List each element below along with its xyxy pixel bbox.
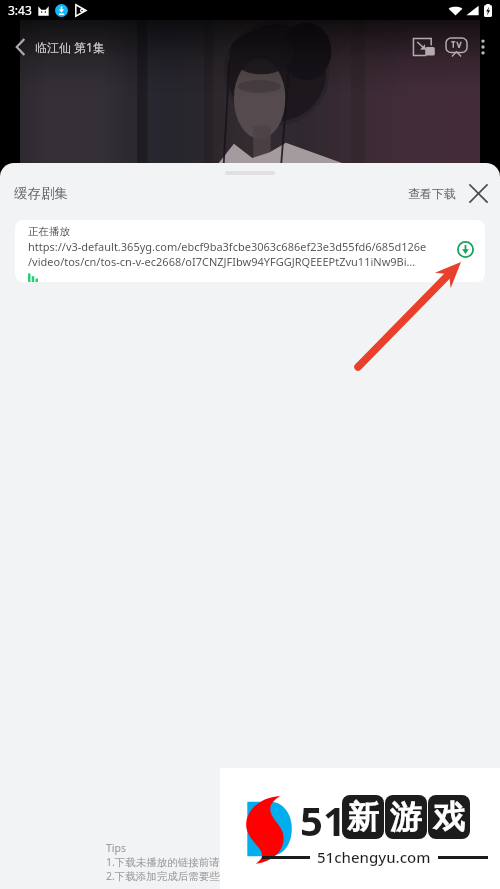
staticText: https://v3-default.365yg.com/ebcf9ba3fcb…: [28, 239, 427, 254]
staticText: Tips: [106, 841, 127, 855]
button[interactable]: More options: [472, 32, 494, 62]
staticText: 2.下载添加完成后需要些时: [106, 869, 231, 883]
staticText: 新: [347, 797, 379, 837]
staticText: 临江仙 第1集: [35, 39, 105, 55]
button[interactable]: Picture in picture: [409, 32, 439, 62]
staticText: 查看下载: [408, 186, 456, 201]
button[interactable]: Back: [5, 32, 35, 62]
staticText: 缓存剧集: [14, 185, 68, 202]
staticText: 戏: [433, 797, 465, 837]
button[interactable]: 查看下载: [402, 179, 462, 208]
button[interactable]: Cast to TV: [441, 32, 471, 62]
button[interactable]: 正在播放: [15, 220, 485, 282]
staticText: /video/tos/cn/tos-cn-v-ec2668/oI7CNZJFIb…: [28, 254, 416, 269]
button[interactable]: Download: [452, 236, 478, 262]
staticText: 51: [300, 793, 346, 847]
staticText: 3:43: [8, 2, 32, 18]
staticText: 游: [390, 797, 422, 837]
staticText: 51chengyu.com: [317, 847, 431, 867]
button[interactable]: Close: [464, 179, 493, 208]
staticText: 正在播放: [28, 225, 70, 238]
staticText: 1.下载未播放的链接前请先: [106, 855, 231, 869]
